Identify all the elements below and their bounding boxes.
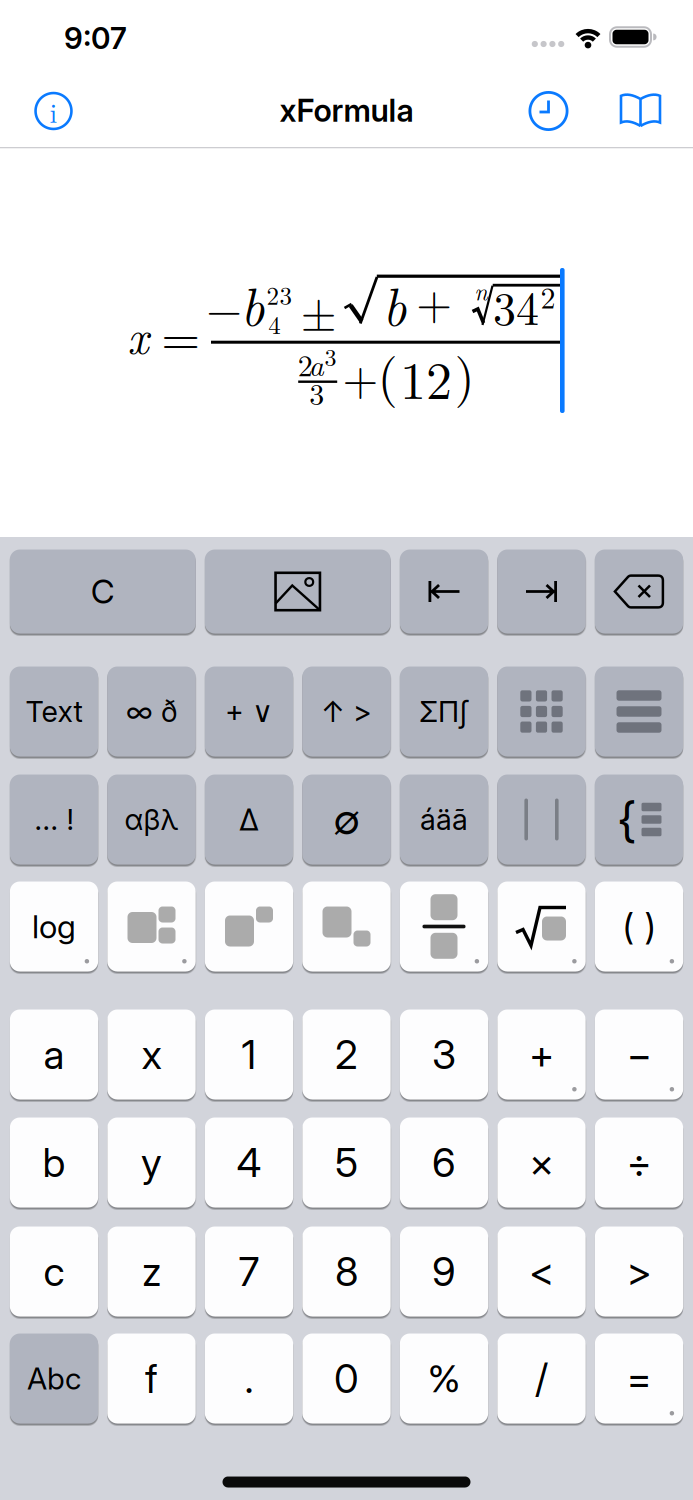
button[interactable]: ÷: [595, 1117, 683, 1207]
button[interactable]: 6: [400, 1117, 488, 1207]
staticText: b: [42, 1138, 65, 1187]
button[interactable]: ∅: [302, 774, 391, 864]
button[interactable]: y: [107, 1117, 196, 1207]
staticText: −: [206, 274, 242, 339]
staticText: 4: [268, 306, 281, 341]
button[interactable]: Δ: [205, 774, 293, 864]
staticText: 34: [493, 273, 539, 338]
button[interactable]: + ∨: [205, 666, 293, 756]
button[interactable]: Abc: [10, 1333, 98, 1423]
button[interactable]: Parentheses: [595, 881, 683, 971]
button[interactable]: Text: [10, 666, 98, 756]
staticText: Abc: [27, 1360, 81, 1397]
button[interactable]: List: [595, 666, 683, 756]
button[interactable]: History: [528, 91, 568, 131]
staticText: Text: [25, 694, 82, 729]
staticText: n: [474, 273, 487, 307]
button[interactable]: Square root: [497, 881, 586, 971]
button[interactable]: 7: [205, 1226, 293, 1316]
button[interactable]: Delete: [595, 549, 683, 633]
button[interactable]: Cases: [595, 774, 683, 864]
staticText: >: [626, 1247, 651, 1296]
staticText: 6: [432, 1138, 456, 1187]
staticText: =: [161, 299, 200, 369]
button[interactable]: c: [10, 1226, 98, 1316]
button[interactable]: =: [595, 1333, 683, 1423]
staticText: ±: [301, 279, 337, 344]
button[interactable]: ∞ ð: [107, 666, 196, 756]
button[interactable]: Absolute value: [497, 774, 586, 864]
staticText: 9:07: [64, 20, 127, 56]
staticText: 4: [236, 1138, 261, 1187]
staticText: 23: [266, 277, 292, 312]
button[interactable]: f: [107, 1333, 196, 1423]
button[interactable]: 3: [400, 1009, 488, 1099]
staticText: c: [43, 1247, 64, 1296]
staticText: .: [244, 1354, 253, 1403]
staticText: =: [626, 1354, 651, 1403]
button[interactable]: Matrix: [497, 666, 586, 756]
staticText: ... !: [34, 802, 73, 837]
button[interactable]: ×: [497, 1117, 586, 1207]
staticText: 2: [335, 1030, 358, 1079]
staticText: 3: [324, 339, 336, 373]
button[interactable]: Fraction: [400, 881, 488, 971]
button[interactable]: Superscript: [205, 881, 293, 971]
staticText: ΣΠ∫: [419, 694, 469, 729]
button[interactable]: ΣΠ∫: [400, 666, 488, 756]
button[interactable]: 9: [400, 1226, 488, 1316]
button[interactable]: −: [595, 1009, 683, 1099]
button[interactable]: Home: [222, 1476, 470, 1487]
button[interactable]: Subscript: [302, 881, 391, 971]
button[interactable]: C: [10, 549, 196, 633]
staticText: −: [626, 1030, 651, 1079]
button[interactable]: log: [10, 881, 98, 971]
button[interactable]: 2: [302, 1009, 391, 1099]
button[interactable]: a: [10, 1009, 98, 1099]
button[interactable]: 4: [205, 1117, 293, 1207]
staticText: 2: [540, 275, 555, 317]
staticText: +: [416, 267, 452, 333]
button[interactable]: Sub and superscript: [107, 881, 196, 971]
button[interactable]: Info: [34, 91, 73, 131]
staticText: z: [142, 1247, 161, 1296]
staticText: 2: [298, 342, 313, 385]
staticText: ∞ ð: [126, 694, 177, 729]
button[interactable]: <: [497, 1226, 586, 1316]
button[interactable]: ↑ >: [302, 666, 391, 756]
staticText: áäã: [420, 802, 468, 837]
staticText: x: [127, 302, 148, 367]
staticText: 8: [335, 1247, 358, 1296]
staticText: a: [308, 342, 323, 385]
staticText: 3: [432, 1030, 456, 1079]
button[interactable]: /: [497, 1333, 586, 1423]
button[interactable]: %: [400, 1333, 488, 1423]
staticText: (: [377, 336, 397, 410]
staticText: ↑ >: [321, 694, 372, 729]
button[interactable]: áäã: [400, 774, 488, 864]
button[interactable]: x: [107, 1009, 196, 1099]
staticText: ): [644, 905, 655, 948]
button[interactable]: 0: [302, 1333, 391, 1423]
button[interactable]: 5: [302, 1117, 391, 1207]
button[interactable]: ... !: [10, 774, 98, 864]
button[interactable]: Move cursor to start: [400, 549, 488, 633]
button[interactable]: 1: [205, 1009, 293, 1099]
staticText: 1: [241, 1030, 256, 1079]
staticText: + ∨: [225, 694, 273, 729]
staticText: ÷: [626, 1138, 651, 1187]
button[interactable]: z: [107, 1226, 196, 1316]
button[interactable]: 8: [302, 1226, 391, 1316]
staticText: a: [43, 1030, 64, 1079]
button[interactable]: Insert image: [205, 549, 391, 633]
button[interactable]: αβλ: [107, 774, 196, 864]
button[interactable]: b: [10, 1117, 98, 1207]
button[interactable]: .: [205, 1333, 293, 1423]
button[interactable]: Move cursor to end: [497, 549, 586, 633]
staticText: (: [622, 905, 633, 948]
button[interactable]: Library: [619, 94, 662, 128]
staticText: xFormula: [279, 92, 413, 129]
button[interactable]: >: [595, 1226, 683, 1316]
button[interactable]: +: [497, 1009, 586, 1099]
staticText: b: [240, 267, 264, 340]
